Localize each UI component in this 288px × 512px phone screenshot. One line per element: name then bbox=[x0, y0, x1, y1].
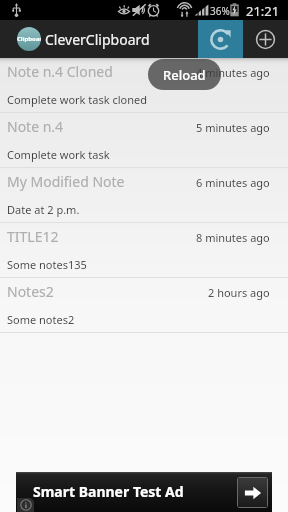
staticText: CleverClipboard bbox=[45, 30, 150, 49]
button[interactable]: Open ad bbox=[238, 478, 267, 507]
button[interactable]: Ad info bbox=[17, 498, 34, 512]
staticText: Smart Banner Test Ad bbox=[33, 482, 184, 501]
button[interactable]: Notes2 bbox=[0, 278, 288, 333]
staticText: Reload bbox=[163, 66, 206, 84]
staticText: Notes2 bbox=[7, 282, 54, 301]
staticText: Date at 2 p.m. bbox=[7, 202, 80, 217]
staticText: 2 hours ago bbox=[208, 285, 270, 300]
staticText: 8 minutes ago bbox=[196, 230, 270, 245]
staticText: My Modified Note bbox=[7, 172, 125, 191]
button[interactable]: Add note bbox=[243, 20, 288, 58]
staticText: Some notes135 bbox=[7, 257, 87, 272]
button[interactable]: Smart Banner Test Ad bbox=[16, 472, 272, 512]
staticText: TITLE12 bbox=[7, 227, 59, 246]
button[interactable]: Note n.4 Cloned bbox=[0, 58, 288, 113]
staticText: 6 minutes ago bbox=[196, 175, 270, 190]
staticText: Note n.4 Cloned bbox=[7, 62, 113, 81]
staticText: 4 minutes ago bbox=[196, 65, 270, 80]
button[interactable]: Note n.4 bbox=[0, 113, 288, 168]
staticText: Complete work task bbox=[7, 147, 110, 162]
staticText: 5 minutes ago bbox=[196, 120, 270, 135]
button[interactable]: My Modified Note bbox=[0, 168, 288, 223]
staticText: Some notes2 bbox=[7, 312, 75, 327]
button[interactable]: TITLE12 bbox=[0, 223, 288, 278]
staticText: 36% bbox=[210, 4, 230, 18]
button[interactable]: Reload bbox=[198, 20, 243, 58]
staticText: 21:21 bbox=[246, 2, 280, 20]
staticText: Note n.4 bbox=[7, 117, 64, 136]
staticText: Complete work task cloned bbox=[7, 92, 147, 107]
staticText: Clipboard bbox=[17, 35, 41, 43]
